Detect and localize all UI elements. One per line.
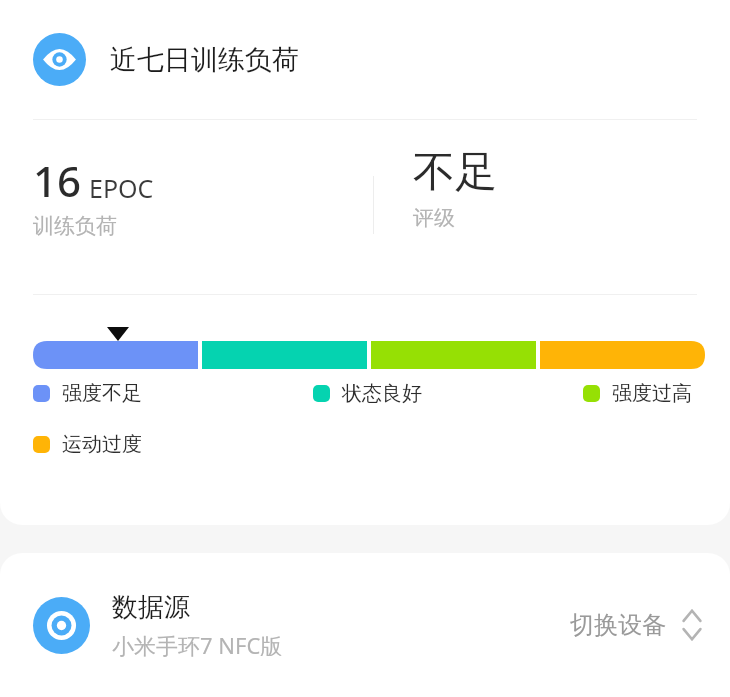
staticText: 强度不足 [62,381,142,406]
button[interactable]: 状态良好 [313,381,583,406]
button[interactable]: 数据源 [0,553,730,697]
staticText: EPOC [89,171,154,205]
staticText: 16 [33,152,82,209]
button[interactable]: 运动过度 [33,432,142,457]
staticText: 运动过度 [62,432,142,457]
staticText: 小米手环7 NFC版 [112,630,283,660]
staticText: 评级 [413,205,455,231]
button[interactable]: 强度过高 [583,381,692,406]
other: Switch device [682,608,702,642]
staticText: 数据源 [112,591,190,624]
staticText: 状态良好 [342,381,422,406]
staticText: 不足 [413,146,497,199]
staticText: 切换设备 [570,610,666,640]
staticText: 训练负荷 [33,213,117,239]
button[interactable]: 近七日训练负荷 [0,0,730,119]
staticText: 近七日训练负荷 [110,43,299,77]
staticText: 强度过高 [612,381,692,406]
button[interactable]: 强度不足 [33,381,313,406]
